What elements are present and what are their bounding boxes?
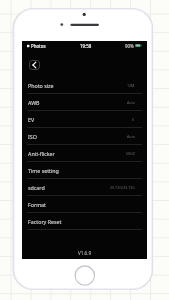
button[interactable]: EV <box>22 111 147 128</box>
staticText: 19:58 <box>80 43 92 49</box>
staticText: 29.72G/29.73G <box>110 185 135 190</box>
staticText: V1.6.9 <box>78 250 92 256</box>
staticText: Time setting <box>28 167 59 174</box>
button[interactable]: Format <box>22 196 147 213</box>
staticText: Photo size <box>28 82 54 89</box>
staticText: sdcard <box>28 184 45 191</box>
staticText: Photos <box>31 43 46 49</box>
staticText: 60HZ <box>126 151 135 156</box>
button[interactable]: AWB <box>22 94 147 111</box>
staticText: Auto <box>127 134 135 139</box>
button[interactable]: Factory Reset <box>22 213 147 230</box>
staticText: Anti-flicker <box>28 150 55 157</box>
staticText: Factory Reset <box>28 218 62 225</box>
button[interactable]: sdcard <box>22 179 147 196</box>
staticText: 12M <box>127 83 135 88</box>
staticText: AWB <box>28 99 40 106</box>
staticText: 0 <box>132 117 135 122</box>
staticText: 90% <box>125 43 134 49</box>
button[interactable]: Time setting <box>22 162 147 179</box>
button[interactable]: Photo size <box>22 77 147 94</box>
button[interactable]: ISO <box>22 128 147 145</box>
staticText: Format <box>28 201 46 208</box>
staticText: Auto <box>127 100 135 105</box>
staticText: ISO <box>28 133 37 140</box>
button[interactable]: Anti-flicker <box>22 145 147 162</box>
staticText: EV <box>28 116 35 123</box>
button[interactable]: Back <box>29 60 40 70</box>
